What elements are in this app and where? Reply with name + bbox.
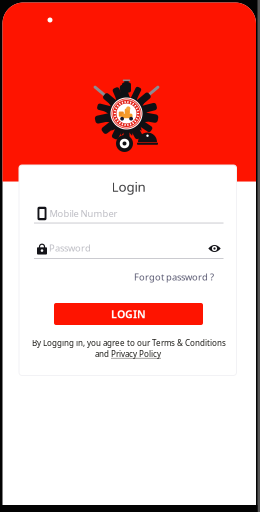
button[interactable]: Forgot password ? [134, 271, 214, 283]
staticText: Password [49, 242, 91, 254]
button[interactable]: Show password [204, 239, 224, 257]
button[interactable]: LOGIN [54, 303, 203, 325]
staticText: Forgot password ? [134, 271, 214, 283]
staticText: and Privacy Policy [95, 349, 161, 359]
button[interactable]: and Privacy Policy [95, 349, 161, 359]
staticText: LOGIN [111, 307, 146, 321]
staticText: Mobile Number [49, 207, 117, 220]
staticText: By Logging in, you agree to our Terms & … [32, 338, 226, 348]
button[interactable]: By Logging in, you agree to our Terms & … [32, 338, 226, 348]
staticText: Login [111, 178, 145, 195]
